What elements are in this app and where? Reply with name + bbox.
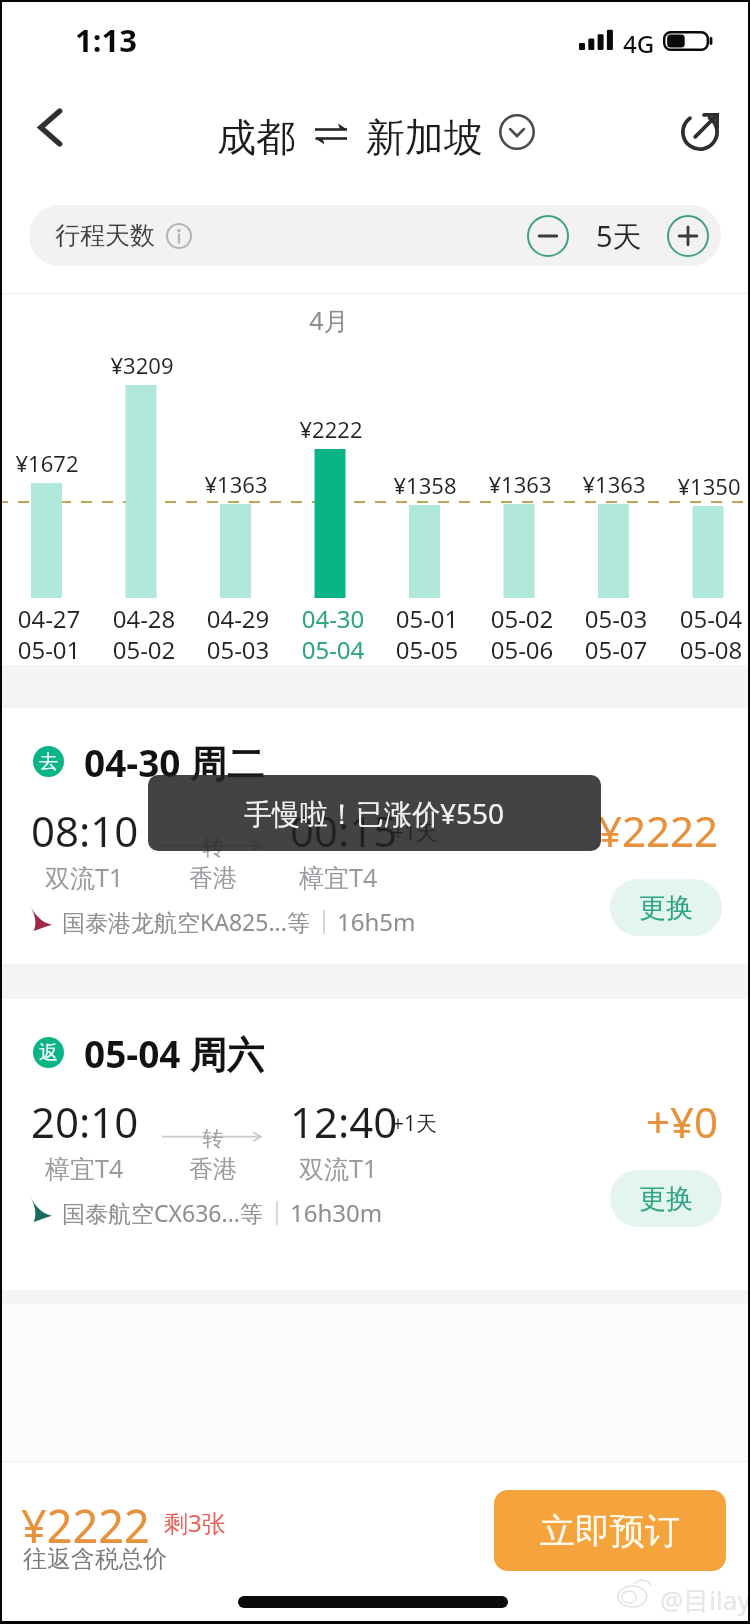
staticText: 04-30 周二	[84, 737, 265, 788]
staticText: 05-05	[367, 633, 487, 666]
staticText: 樟宜T4	[299, 860, 378, 894]
staticText: 04-30	[273, 602, 393, 635]
staticText: 04-29	[178, 602, 298, 635]
staticText: 手慢啦！已涨价¥550	[244, 794, 505, 832]
staticText: 双流T1	[45, 860, 124, 894]
staticText: 香港	[184, 1154, 242, 1184]
staticText: @目ilay	[660, 1582, 750, 1618]
button[interactable]: Info	[166, 223, 192, 249]
staticText: 04-27	[0, 602, 109, 635]
button[interactable]: Back	[14, 91, 86, 163]
staticText: ¥1363	[176, 469, 296, 499]
staticText: ¥1672	[0, 448, 107, 478]
staticText: 00:15	[290, 802, 398, 859]
staticText: ¥3209	[82, 350, 202, 380]
button[interactable]: Switch cities	[491, 106, 543, 158]
button[interactable]: 立即预订	[494, 1490, 726, 1571]
staticText: 双流T1	[299, 1151, 378, 1185]
staticText: 12:40	[290, 1093, 398, 1150]
button[interactable]: 更换	[610, 1170, 722, 1227]
staticText: 05-04 周六	[84, 1028, 265, 1079]
staticText: ¥2222	[520, 802, 718, 859]
staticText: 1:13	[75, 19, 137, 61]
staticText: 05-04	[273, 633, 393, 666]
staticText: 樟宜T4	[45, 1151, 124, 1185]
staticText: 往返含税总价	[23, 1544, 167, 1574]
staticText: ¥1358	[365, 470, 485, 500]
staticText: 更换	[639, 1182, 693, 1216]
staticText: 4G	[623, 27, 655, 60]
staticText: +1天	[392, 818, 438, 847]
staticText: 更换	[639, 891, 693, 925]
staticText: 05-02	[84, 633, 204, 666]
staticText: ¥1350	[649, 471, 750, 501]
staticText: ¥1363	[554, 469, 674, 499]
staticText: +1天	[392, 1109, 438, 1138]
staticText: 行程天数	[55, 220, 155, 251]
button[interactable]	[0, 708, 750, 964]
button[interactable]: 更换	[610, 879, 722, 936]
staticText: 国泰港龙航空KA825...等	[62, 906, 310, 937]
staticText: 4月	[269, 303, 389, 337]
staticText: 转	[188, 835, 238, 861]
staticText: 05-04	[651, 602, 750, 635]
staticText: ¥1363	[460, 469, 580, 499]
staticText: ¥2222	[21, 1495, 150, 1556]
staticText: 新加坡	[366, 113, 483, 162]
button[interactable]: 行程天数	[29, 205, 721, 266]
staticText: 转	[188, 1126, 238, 1152]
staticText: 5天	[596, 216, 642, 256]
staticText: 剩3张	[164, 1506, 226, 1539]
staticText: 香港	[184, 863, 242, 893]
button[interactable]: Share	[664, 96, 736, 168]
staticText: 16h30m	[290, 1196, 383, 1229]
staticText: 返	[39, 1041, 58, 1065]
staticText: 去	[39, 750, 58, 774]
staticText: 立即预订	[540, 1509, 680, 1553]
staticText: +¥0	[520, 1093, 718, 1150]
staticText: 08:10	[31, 802, 139, 859]
staticText: 成都	[217, 113, 295, 162]
staticText: 05-01	[367, 602, 487, 635]
staticText: 05-03	[178, 633, 298, 666]
button[interactable]: Decrease days	[527, 215, 569, 257]
staticText: 05-03	[556, 602, 676, 635]
staticText: 16h5m	[337, 905, 416, 938]
staticText: ¥2222	[271, 414, 391, 444]
staticText: 国泰航空CX636...等	[62, 1197, 263, 1228]
staticText: 05-06	[462, 633, 582, 666]
staticText: 05-08	[651, 633, 750, 666]
staticText: 04-28	[84, 602, 204, 635]
staticText: 20:10	[31, 1093, 139, 1150]
button[interactable]: Increase days	[667, 215, 709, 257]
staticText: 05-02	[462, 602, 582, 635]
button[interactable]	[0, 999, 750, 1290]
staticText: 05-01	[0, 633, 109, 666]
staticText: 05-07	[556, 633, 676, 666]
